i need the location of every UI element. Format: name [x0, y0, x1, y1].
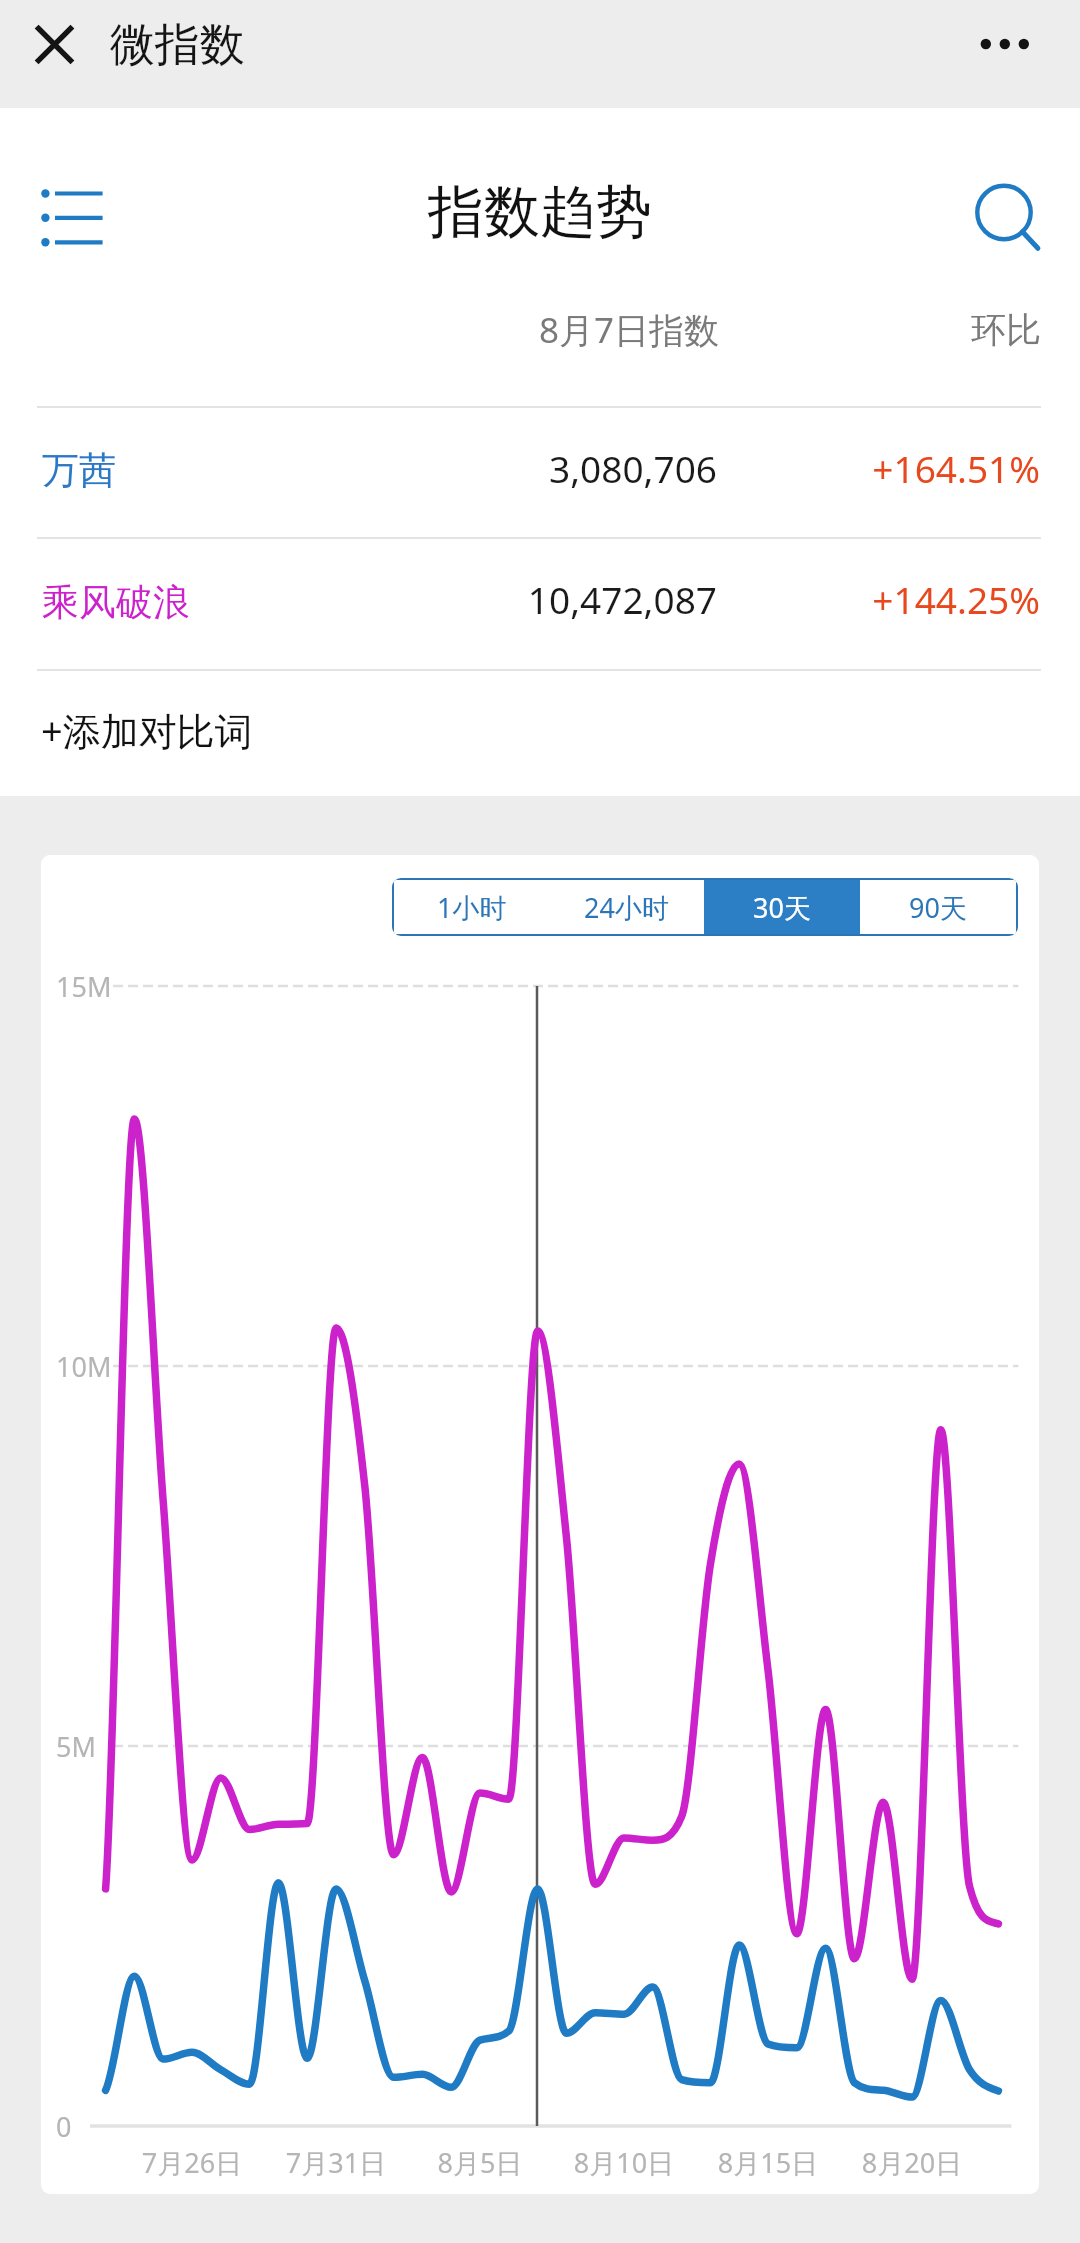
button[interactable]: Search: [960, 168, 1056, 264]
button[interactable]: 24小时: [549, 880, 704, 934]
staticText: 3,080,706: [380, 443, 717, 493]
button[interactable]: More options: [965, 4, 1045, 84]
staticText: +添加对比词: [41, 704, 253, 756]
staticText: 万茜: [42, 447, 116, 494]
staticText: 7月26日: [92, 2144, 292, 2181]
staticText: 1小时: [437, 889, 507, 926]
staticText: 10M: [56, 1348, 112, 1385]
staticText: 24小时: [584, 889, 669, 926]
staticText: 8月7日指数: [380, 306, 719, 354]
staticText: 指数趋势: [330, 177, 750, 248]
staticText: 90天: [909, 889, 967, 926]
staticText: 0: [56, 2108, 72, 2145]
staticText: 5M: [56, 1728, 96, 1765]
button[interactable]: 1小时: [394, 880, 549, 934]
button[interactable]: Close: [16, 6, 93, 83]
staticText: 8月10日: [524, 2144, 724, 2181]
staticText: 环比: [741, 308, 1041, 352]
button[interactable]: +添加对比词: [0, 671, 1080, 796]
staticText: 10,472,087: [380, 574, 717, 624]
button[interactable]: List view: [20, 170, 120, 266]
button[interactable]: 30天: [704, 880, 860, 934]
staticText: 微指数: [110, 17, 245, 74]
staticText: +144.25%: [741, 574, 1040, 624]
staticText: 8月5日: [380, 2144, 580, 2181]
staticText: 30天: [753, 889, 811, 926]
staticText: +164.51%: [741, 443, 1040, 493]
staticText: 8月20日: [812, 2144, 1012, 2181]
staticText: 乘风破浪: [42, 579, 190, 626]
staticText: 7月31日: [236, 2144, 436, 2181]
button[interactable]: 万茜: [0, 408, 1080, 537]
button[interactable]: 90天: [860, 880, 1016, 934]
button[interactable]: 乘风破浪: [0, 539, 1080, 669]
staticText: 15M: [56, 968, 112, 1005]
staticText: 8月15日: [668, 2144, 868, 2181]
